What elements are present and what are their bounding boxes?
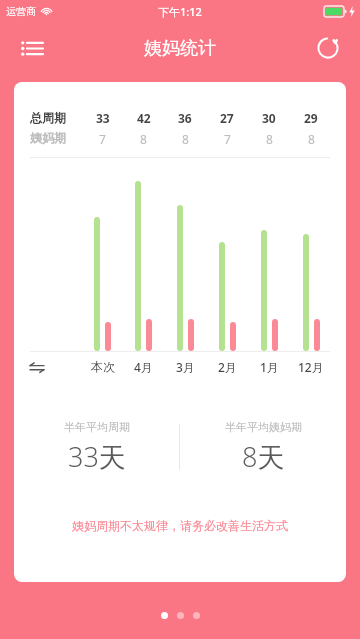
staticText: 8 <box>266 131 273 147</box>
staticText: 姨妈周期不太规律，请务必改善生活方式 <box>14 518 346 533</box>
staticText: 4月 <box>134 359 153 375</box>
staticText: 运营商 <box>6 5 36 18</box>
staticText: 半年平均周期 <box>64 420 130 434</box>
staticText: 29 <box>304 110 318 126</box>
staticText: 2月 <box>218 359 237 375</box>
staticText: 7 <box>224 131 231 147</box>
staticText: 总周期 <box>30 110 66 125</box>
staticText: 30 <box>262 110 276 126</box>
staticText: 7 <box>99 131 106 147</box>
staticText: 1月 <box>260 359 279 375</box>
staticText: 8 <box>308 131 315 147</box>
button[interactable]: Switch chart <box>30 352 82 382</box>
staticText: 36 <box>178 110 192 126</box>
staticText: 半年平均姨妈期 <box>225 420 302 434</box>
staticText: 8 <box>140 131 147 147</box>
staticText: 12月 <box>298 359 324 375</box>
button[interactable]: Refresh <box>308 28 348 68</box>
button[interactable] <box>161 612 168 619</box>
button[interactable]: 半年平均姨妈期 <box>180 420 346 475</box>
button[interactable]: 半年平均周期 <box>14 420 179 475</box>
button[interactable]: Menu <box>12 28 52 68</box>
staticText: 42 <box>137 110 151 126</box>
staticText: 27 <box>220 110 234 126</box>
staticText: 8天 <box>242 438 285 475</box>
staticText: 姨妈期 <box>30 130 66 145</box>
staticText: 姨妈统计 <box>144 37 216 60</box>
staticText: 3月 <box>176 359 195 375</box>
button[interactable] <box>177 612 184 619</box>
button[interactable] <box>193 612 200 619</box>
staticText: 33 <box>96 110 110 126</box>
staticText: 下午1:12 <box>158 4 202 19</box>
staticText: 33天 <box>68 438 126 475</box>
staticText: 8 <box>182 131 189 147</box>
staticText: 本次 <box>91 359 115 374</box>
